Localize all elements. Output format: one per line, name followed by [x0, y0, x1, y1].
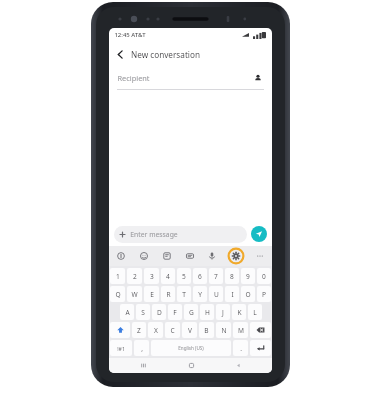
staticText: 6 — [198, 272, 202, 281]
button[interactable]: Recipient — [117, 67, 264, 89]
button[interactable]: Back — [109, 41, 272, 67]
button[interactable]: S — [136, 304, 150, 320]
staticText: 12:45 AT&T — [114, 31, 146, 39]
staticText: 1 — [116, 272, 120, 281]
staticText: 9 — [246, 272, 250, 281]
staticText: C — [170, 326, 175, 335]
button[interactable]: 2 — [127, 268, 142, 284]
button[interactable]: U — [209, 286, 223, 302]
button[interactable]: 3 — [144, 268, 159, 284]
button[interactable]: Backspace — [250, 322, 271, 338]
button[interactable]: 8 — [225, 268, 239, 284]
button[interactable]: W — [127, 286, 142, 302]
staticText: I — [231, 290, 234, 299]
button[interactable]: Back — [109, 43, 131, 65]
button[interactable]: Enter message — [114, 226, 247, 243]
button[interactable]: 5 — [177, 268, 191, 284]
button[interactable]: 1 — [110, 268, 125, 284]
button[interactable]: B — [199, 322, 214, 338]
staticText: J — [222, 308, 224, 317]
button[interactable]: , — [134, 340, 149, 356]
button[interactable]: Back — [225, 358, 251, 373]
button[interactable]: Keyboard settings — [226, 246, 246, 266]
staticText: Y — [198, 290, 202, 299]
staticText: English (US) — [178, 345, 204, 351]
button[interactable]: Q — [110, 286, 125, 302]
button[interactable]: Shift — [110, 322, 130, 338]
button[interactable]: K — [232, 304, 246, 320]
button[interactable]: D — [152, 304, 166, 320]
button[interactable]: R — [161, 286, 175, 302]
staticText: L — [253, 308, 257, 317]
button[interactable]: Handwriting — [112, 247, 130, 265]
staticText: D — [157, 308, 162, 317]
staticText: 3 — [150, 272, 154, 281]
button[interactable]: J — [216, 304, 230, 320]
staticText: K — [237, 308, 242, 317]
staticText: , — [141, 344, 143, 353]
button[interactable]: 0 — [257, 268, 271, 284]
staticText: T — [182, 290, 186, 299]
button[interactable]: Emoji — [135, 247, 153, 265]
button[interactable]: 4 — [161, 268, 175, 284]
button[interactable]: Recents — [130, 358, 156, 373]
staticText: 8 — [230, 272, 234, 281]
button[interactable]: C — [165, 322, 180, 338]
button[interactable]: 9 — [241, 268, 255, 284]
staticText: New conversation — [131, 49, 200, 60]
button[interactable]: E — [144, 286, 159, 302]
staticText: E — [150, 290, 154, 299]
staticText: Z — [137, 326, 141, 335]
button[interactable]: 6 — [193, 268, 207, 284]
button[interactable]: H — [200, 304, 214, 320]
button[interactable]: English (US) — [151, 340, 231, 356]
staticText: H — [205, 308, 210, 317]
button[interactable]: Y — [193, 286, 207, 302]
button[interactable]: Clipboard — [181, 247, 199, 265]
button[interactable]: !#1 — [110, 340, 132, 356]
staticText: X — [154, 326, 158, 335]
button[interactable]: Stickers — [158, 247, 176, 265]
button[interactable]: O — [241, 286, 255, 302]
staticText: A — [125, 308, 130, 317]
button[interactable]: Z — [132, 322, 146, 338]
staticText: 2 — [133, 272, 137, 281]
staticText: G — [189, 308, 194, 317]
button[interactable]: M — [233, 322, 248, 338]
button[interactable]: F — [168, 304, 182, 320]
button[interactable]: Contacts — [252, 72, 264, 84]
button[interactable]: P — [257, 286, 271, 302]
button[interactable]: L — [248, 304, 262, 320]
staticText: W — [131, 290, 138, 299]
staticText: 0 — [262, 272, 266, 281]
staticText: N — [221, 326, 227, 335]
button[interactable]: N — [216, 322, 231, 338]
staticText: Enter message — [130, 230, 178, 239]
button[interactable]: 7 — [209, 268, 223, 284]
button[interactable]: Enter — [250, 340, 271, 356]
staticText: . — [240, 344, 242, 353]
staticText: B — [204, 326, 209, 335]
staticText: V — [188, 326, 192, 335]
staticText: 5 — [182, 272, 186, 281]
staticText: Recipient — [117, 73, 150, 83]
button[interactable]: I — [225, 286, 239, 302]
button[interactable]: G — [184, 304, 198, 320]
button[interactable]: . — [233, 340, 248, 356]
button[interactable]: Voice input — [203, 247, 221, 265]
staticText: 4 — [166, 272, 170, 281]
staticText: F — [173, 308, 177, 317]
button[interactable]: V — [182, 322, 197, 338]
staticText: M — [238, 326, 244, 335]
staticText: U — [214, 290, 219, 299]
staticText: R — [166, 290, 171, 299]
staticText: Q — [115, 290, 121, 299]
staticText: 7 — [214, 272, 218, 281]
button[interactable]: Home — [178, 358, 204, 373]
staticText: !#1 — [117, 345, 125, 352]
button[interactable]: T — [177, 286, 191, 302]
button[interactable]: X — [148, 322, 163, 338]
button[interactable]: Send — [251, 226, 267, 242]
button[interactable]: A — [120, 304, 134, 320]
button[interactable]: More options — [251, 247, 269, 265]
